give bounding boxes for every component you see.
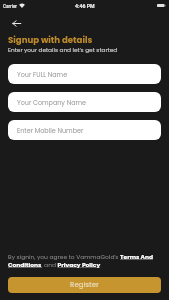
staticText: Signup with details bbox=[8, 34, 93, 46]
button[interactable]: Back bbox=[9, 16, 23, 30]
staticText: Register bbox=[70, 280, 99, 290]
staticText: Your Company Name bbox=[17, 98, 86, 107]
button[interactable]: Register bbox=[8, 277, 161, 293]
button[interactable]: Enter Mobile Number bbox=[8, 120, 161, 140]
staticText: Enter your details and let's get started bbox=[8, 46, 118, 54]
staticText: 4:46 PM bbox=[75, 3, 95, 9]
staticText: Carrier bbox=[3, 4, 17, 9]
staticText: Enter Mobile Number bbox=[17, 126, 84, 135]
button[interactable]: Your FULL Name bbox=[8, 64, 161, 84]
staticText: Your FULL Name bbox=[17, 70, 68, 79]
staticText: By signin, you agree to VammaGold's Term… bbox=[8, 253, 161, 269]
button[interactable]: Your Company Name bbox=[8, 92, 161, 112]
button[interactable]: By signin, you agree to VammaGold's Term… bbox=[8, 253, 161, 269]
